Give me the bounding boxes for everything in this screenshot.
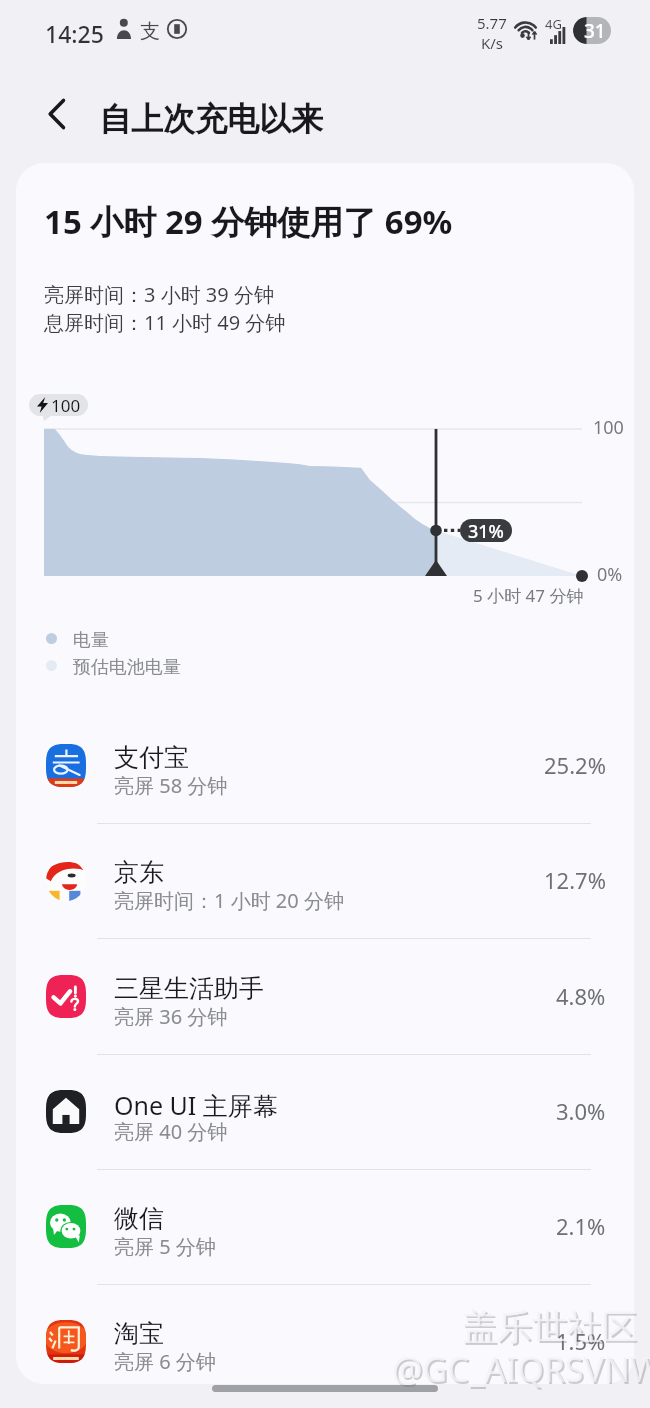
staticText: 支付宝 [114, 742, 189, 773]
staticText: 12.7% [544, 865, 606, 895]
staticText: 淘宝 [114, 1318, 164, 1349]
staticText: 1.5% [556, 1326, 606, 1356]
staticText: 2.1% [556, 1211, 606, 1241]
staticText: 25.2% [544, 750, 606, 780]
staticText: 亮屏 36 分钟 [114, 1003, 228, 1030]
staticText: 15 小时 29 分钟使用了 69% [44, 199, 453, 244]
staticText: 4G [545, 15, 562, 33]
staticText: 5.77 [477, 13, 507, 33]
staticText: 5 小时 47 分钟 [473, 584, 584, 607]
staticText: 微信 [114, 1203, 164, 1234]
staticText: One UI 主屏幕 [114, 1088, 278, 1122]
staticText: 3.0% [556, 1096, 606, 1126]
staticText: 亮屏 5 分钟 [114, 1233, 216, 1260]
staticText: 息屏时间：11 小时 49 分钟 [44, 309, 286, 336]
staticText: 预估电池电量 [73, 656, 181, 679]
staticText: 0% [597, 562, 623, 587]
staticText: 三星生活助手 [114, 973, 264, 1004]
staticText: @GC_AIQRSVNW [392, 1346, 650, 1392]
staticText: 支 [140, 19, 160, 44]
button[interactable]: One UI 主屏幕 [16, 1054, 634, 1169]
button[interactable]: Back [35, 91, 81, 137]
staticText: 亮屏时间：3 小时 39 分钟 [44, 281, 274, 308]
button[interactable]: 微信 [16, 1169, 634, 1284]
staticText: 亮屏 40 分钟 [114, 1118, 228, 1145]
staticText: 31 [584, 18, 606, 44]
staticText: 4.8% [556, 981, 606, 1011]
staticText: 京东 [114, 857, 164, 888]
staticText: 电量 [73, 629, 109, 652]
staticText: 亮屏 58 分钟 [114, 772, 228, 799]
button[interactable]: 淘宝 [16, 1284, 634, 1384]
staticText: 亮屏 6 分钟 [114, 1348, 216, 1375]
staticText: @GC_AIQRSVNW [394, 1348, 650, 1394]
staticText: 盖乐世社区 [462, 1305, 637, 1349]
button[interactable]: 支付宝 [16, 708, 634, 823]
staticText: 31% [468, 519, 504, 542]
staticText: 亮屏时间：1 小时 20 分钟 [114, 887, 344, 914]
staticText: 盖乐世社区 [464, 1307, 639, 1351]
button[interactable]: 京东 [16, 823, 634, 938]
staticText: 100 [51, 394, 81, 416]
staticText: 14:25 [45, 18, 104, 49]
staticText: 自上次充电以来 [99, 99, 323, 139]
staticText: K/s [481, 33, 504, 53]
button[interactable]: 三星生活助手 [16, 939, 634, 1054]
staticText: 100 [593, 415, 624, 440]
